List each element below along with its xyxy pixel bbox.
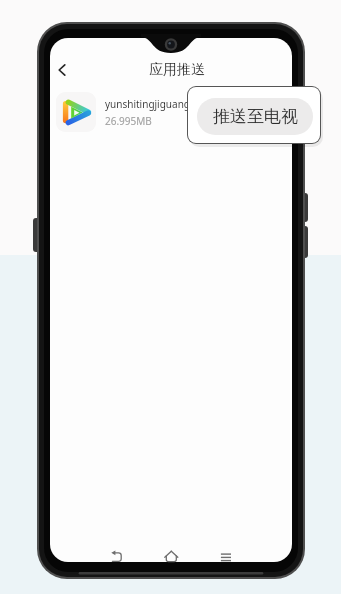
button[interactable]: 推送至电视 — [197, 98, 313, 135]
staticText: yunshitingjiguang_ — [105, 97, 195, 111]
staticText: 26.995MB — [105, 114, 152, 128]
staticText: 推送至电视 — [213, 106, 298, 127]
button[interactable] — [51, 58, 75, 82]
button[interactable] — [52, 88, 202, 136]
staticText: 应用推送 — [149, 61, 205, 79]
